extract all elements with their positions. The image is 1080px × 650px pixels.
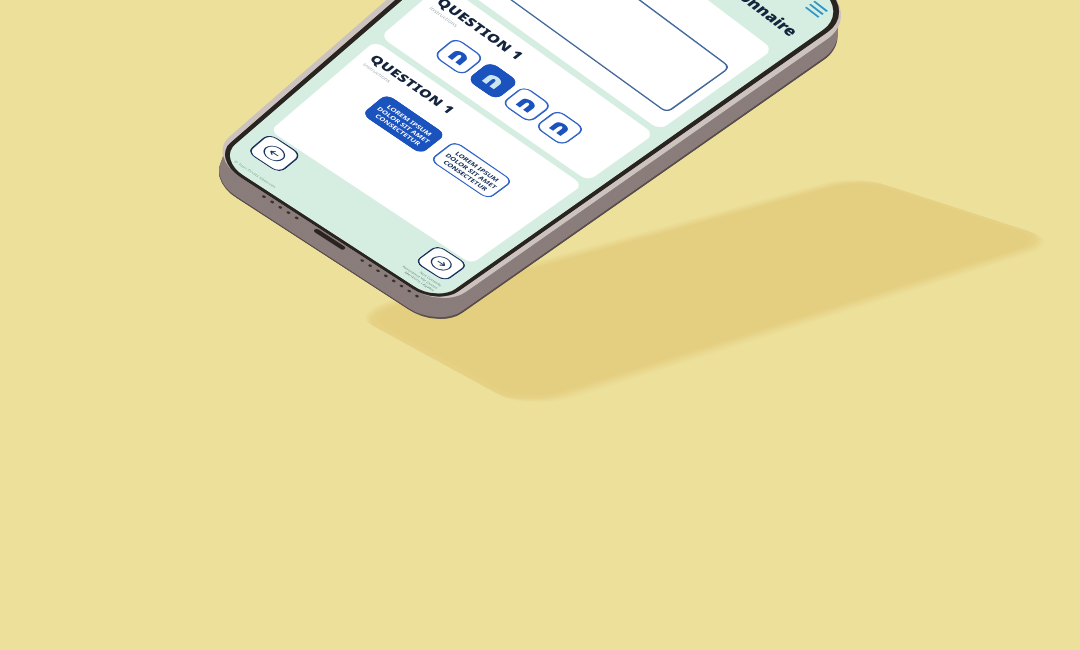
button[interactable]: LOREM IPSUM DOLOR SIT AMET CONSECTETUR xyxy=(472,0,731,114)
button[interactable]: Rating option xyxy=(432,37,485,76)
staticText: LOREM IPSUM DOLOR SIT AMET CONSECTETUR xyxy=(369,100,438,149)
button[interactable]: LOREM IPSUM DOLOR SIT AMET CONSECTETUR xyxy=(361,94,446,154)
button[interactable]: Next xyxy=(414,244,469,282)
button[interactable]: Previous xyxy=(246,133,303,174)
staticText: Questionnaire xyxy=(689,0,804,40)
button[interactable]: Rating option xyxy=(500,85,553,123)
button[interactable]: Rating option xyxy=(534,109,586,147)
staticText: QUESTION 1 xyxy=(366,51,460,117)
button[interactable]: Menu xyxy=(797,0,834,23)
button[interactable]: LOREM IPSUM DOLOR SIT AMET CONSECTETUR xyxy=(429,140,514,200)
staticText: QUESTION 1 xyxy=(433,0,529,64)
staticText: instructions xyxy=(361,62,393,84)
staticText: Nos Conseils Assurance Vie Dunes Mention… xyxy=(397,262,443,292)
button[interactable]: Rating option xyxy=(467,61,519,100)
staticText: instructions xyxy=(428,5,460,29)
staticText: © Tous Droits Réservés xyxy=(233,159,278,189)
staticText: LOREM IPSUM DOLOR SIT AMET CONSECTETUR xyxy=(438,147,505,194)
